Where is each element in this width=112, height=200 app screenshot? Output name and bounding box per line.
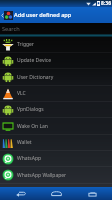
staticText: Trigger: [17, 41, 34, 48]
staticText: WhatsApp: [17, 155, 42, 162]
button[interactable]: Navigate up: [0, 7, 4, 23]
staticText: Update Device: [17, 57, 51, 64]
button[interactable]: Update Device: [0, 53, 112, 69]
button[interactable]: Back: [6, 187, 36, 200]
button[interactable]: Home: [41, 187, 71, 200]
button[interactable]: Recent apps: [77, 187, 107, 200]
button[interactable]: VLC: [0, 86, 112, 102]
staticText: 8:36: [101, 0, 111, 7]
button[interactable]: Search: [0, 23, 112, 34]
staticText: Add user defined app: [14, 11, 72, 19]
button[interactable]: WhatsApp Wallpaper: [0, 167, 112, 184]
button[interactable]: User Dictionary: [0, 69, 112, 86]
button[interactable]: Trigger: [0, 37, 112, 53]
staticText: WhatsApp Wallpaper: [17, 172, 67, 179]
staticText: Wake On Lan: [17, 123, 48, 130]
staticText: Search: [2, 25, 20, 33]
button[interactable]: Wake On Lan: [0, 118, 112, 135]
staticText: VpnDialogs: [17, 106, 44, 113]
button[interactable]: Wallet: [0, 135, 112, 151]
staticText: User Dictionary: [17, 74, 54, 81]
staticText: VLC: [17, 90, 26, 97]
button[interactable]: VpnDialogs: [0, 102, 112, 118]
button[interactable]: WhatsApp: [0, 151, 112, 167]
staticText: Wallet: [17, 139, 32, 146]
